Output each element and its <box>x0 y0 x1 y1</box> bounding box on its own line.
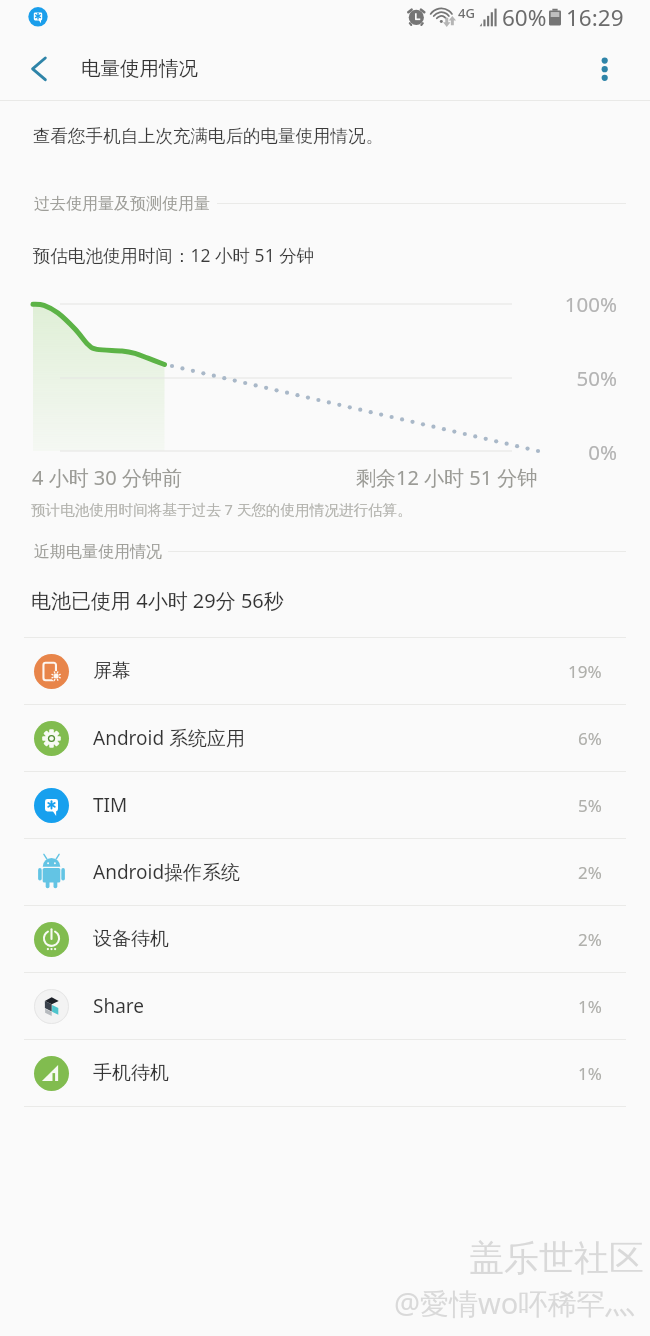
staticText: 100% <box>500 290 617 318</box>
staticText: 50% <box>500 364 617 392</box>
button[interactable]: 手机待机 <box>0 1040 650 1106</box>
staticText: 电池已使用 4小时 29分 56秒 <box>31 587 284 614</box>
staticText: 预计电池使用时间将基于过去 7 天您的使用情况进行估算。 <box>31 499 412 519</box>
staticText: 手机待机 <box>93 1061 169 1085</box>
staticText: Android操作系统 <box>93 859 241 885</box>
staticText: 19% <box>568 660 602 683</box>
staticText: 查看您手机自上次充满电后的电量使用情况。 <box>33 125 383 147</box>
staticText: 1% <box>578 995 602 1018</box>
staticText: Android 系统应用 <box>93 725 246 751</box>
staticText: 预估电池使用时间：12 小时 51 分钟 <box>33 243 315 267</box>
staticText: 4 小时 30 分钟前 <box>32 464 182 491</box>
staticText: 屏幕 <box>93 659 131 683</box>
staticText: 过去使用量及预测使用量 <box>34 194 210 214</box>
staticText: 4G <box>458 4 475 22</box>
staticText: 近期电量使用情况 <box>34 542 162 562</box>
staticText: 盖乐世社区 <box>469 1236 644 1280</box>
button[interactable]: 屏幕 <box>0 638 650 704</box>
button[interactable]: TIM <box>0 772 650 838</box>
button[interactable]: Share <box>0 973 650 1039</box>
staticText: 0% <box>500 438 617 466</box>
button[interactable]: Android 系统应用 <box>0 705 650 771</box>
button[interactable]: Back <box>0 42 72 100</box>
staticText: 设备待机 <box>93 927 169 951</box>
staticText: 1% <box>578 1062 602 1085</box>
staticText: @愛情wo吥稀罕灬 <box>394 1283 635 1323</box>
staticText: 2% <box>578 928 602 951</box>
button[interactable]: More options <box>596 42 650 100</box>
staticText: 60% <box>502 2 547 33</box>
staticText: 16:29 <box>566 2 624 33</box>
staticText: 电量使用情况 <box>81 56 198 81</box>
button[interactable]: Android操作系统 <box>0 839 650 905</box>
staticText: 5% <box>578 794 602 817</box>
staticText: TIM <box>93 792 128 818</box>
button[interactable]: 设备待机 <box>0 906 650 972</box>
staticText: 剩余12 小时 51 分钟 <box>356 464 538 491</box>
staticText: 2% <box>578 861 602 884</box>
staticText: Share <box>93 993 145 1019</box>
staticText: 6% <box>578 727 602 750</box>
